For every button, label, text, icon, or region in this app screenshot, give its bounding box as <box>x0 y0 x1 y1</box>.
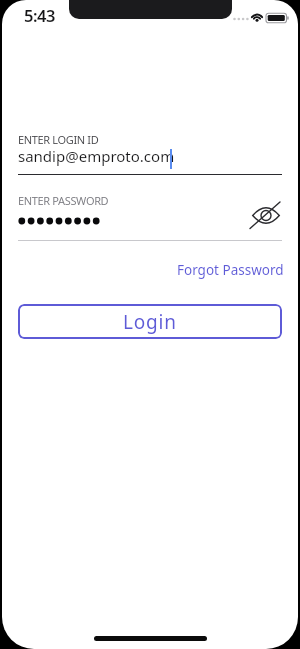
staticText: 5:43 <box>24 4 55 26</box>
button[interactable]: Login <box>18 304 282 339</box>
staticText: ENTER PASSWORD <box>18 193 109 208</box>
button[interactable] <box>18 214 108 228</box>
staticText: Login <box>123 309 177 335</box>
button[interactable] <box>248 199 284 231</box>
button[interactable]: Forgot Password <box>177 261 284 279</box>
staticText: ENTER LOGIN ID <box>18 132 99 147</box>
button[interactable]: sandip@emproto.com <box>18 146 175 166</box>
